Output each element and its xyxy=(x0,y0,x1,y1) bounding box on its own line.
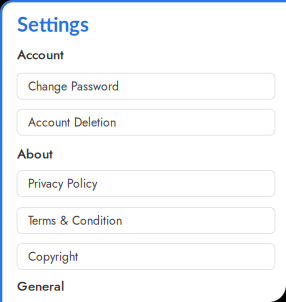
staticText: Copyright xyxy=(28,248,78,265)
staticText: Settings xyxy=(17,12,89,36)
button[interactable]: Change Password xyxy=(17,73,275,99)
staticText: Account xyxy=(17,45,64,64)
staticText: About xyxy=(17,144,53,164)
button[interactable]: Copyright xyxy=(17,243,275,269)
staticText: Terms & Condition xyxy=(28,212,122,229)
staticText: Privacy Policy xyxy=(28,175,97,192)
button[interactable]: Account Deletion xyxy=(17,109,275,135)
staticText: Change Password xyxy=(28,78,119,95)
staticText: General xyxy=(17,276,64,296)
button[interactable]: Terms & Condition xyxy=(17,207,275,233)
button[interactable]: Privacy Policy xyxy=(17,170,275,196)
staticText: Account Deletion xyxy=(28,114,116,131)
